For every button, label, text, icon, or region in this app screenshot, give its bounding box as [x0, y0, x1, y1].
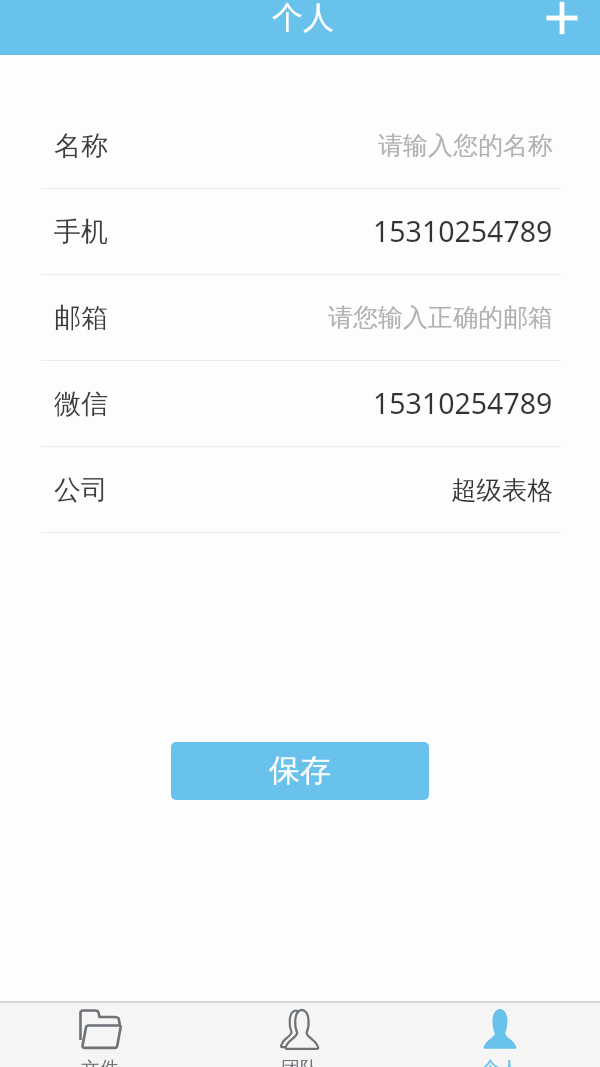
staticText: 手机 — [54, 215, 108, 249]
staticText: 个人 — [272, 0, 334, 37]
staticText: 微信 — [54, 387, 108, 421]
staticText: 文件 — [81, 1057, 119, 1067]
button[interactable]: 邮箱 — [0, 275, 600, 360]
staticText: 公司 — [54, 473, 108, 507]
staticText: 15310254789 — [373, 212, 553, 251]
staticText: 个人 — [481, 1057, 519, 1067]
button[interactable]: 名称 — [0, 103, 600, 188]
button[interactable]: 团队 — [200, 1003, 400, 1067]
staticText: 邮箱 — [54, 301, 108, 335]
staticText: 超级表格 — [451, 474, 553, 506]
button[interactable]: 手机 — [0, 189, 600, 274]
staticText: 名称 — [54, 129, 108, 163]
button[interactable]: 保存 — [171, 742, 429, 800]
button[interactable]: 个人 — [400, 1003, 600, 1067]
button[interactable]: Add — [545, 0, 600, 55]
staticText: 团队 — [281, 1057, 319, 1067]
staticText: 保存 — [269, 751, 331, 790]
staticText: 15310254789 — [373, 384, 553, 423]
button[interactable]: 公司 — [0, 447, 600, 532]
staticText: 请输入您的名称 — [378, 130, 553, 161]
button[interactable]: 微信 — [0, 361, 600, 446]
button[interactable]: 文件 — [0, 1003, 200, 1067]
staticText: 请您输入正确的邮箱 — [328, 302, 553, 333]
